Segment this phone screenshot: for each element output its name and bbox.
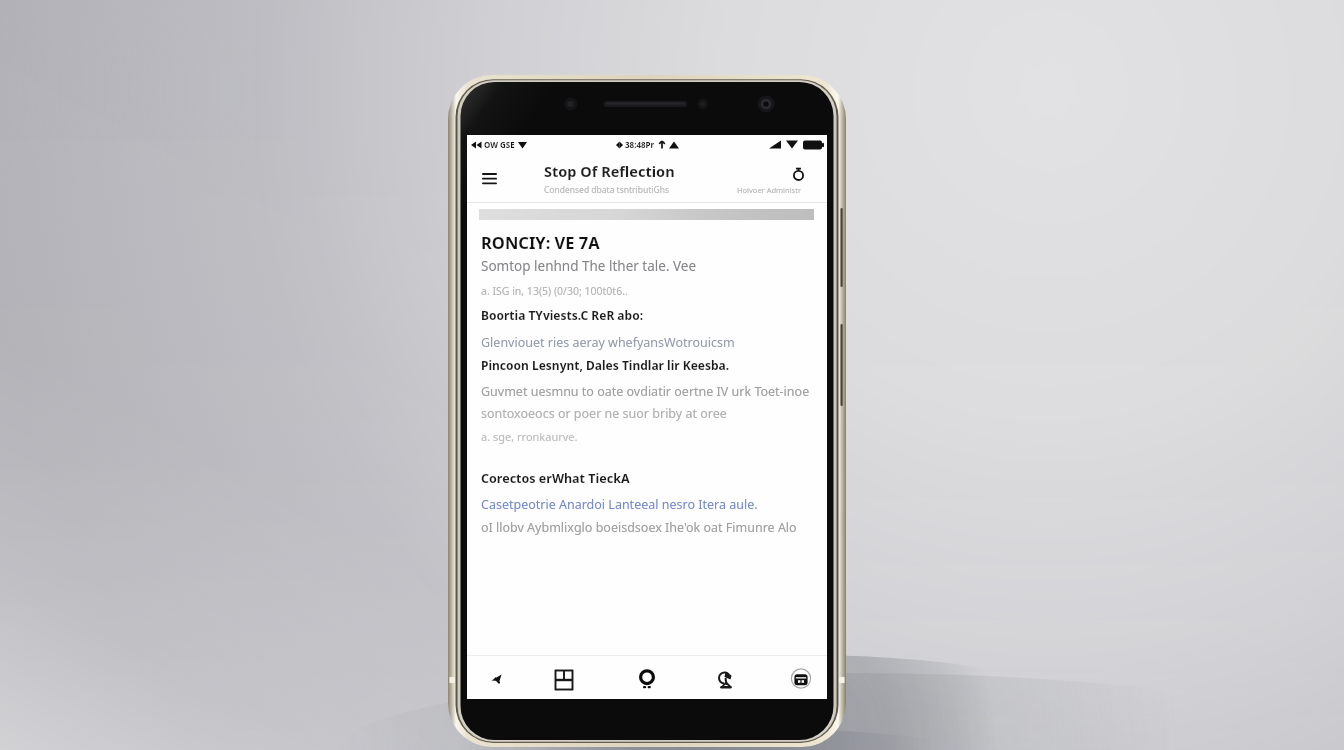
staticText: Condensed dbata tsntributiGhs (544, 184, 670, 196)
staticText: a. sge, rronkaurve. (481, 429, 578, 444)
staticText: Guvmet uesmnu to oate ovdiatir oertne IV… (481, 383, 810, 400)
staticText: Holvoer Administr (737, 185, 801, 195)
button[interactable]: Menu (476, 165, 502, 191)
staticText: Pincoon Lesnynt, Dales Tindlar lir Keesb… (481, 357, 730, 373)
staticText: Corectos erWhat TieckA (481, 470, 630, 487)
button[interactable]: Casetpeotrie Anardoi Lanteeal nesro Iter… (481, 496, 758, 513)
button[interactable]: Account (788, 163, 808, 183)
staticText: Boortia TYviests.C ReR abo: (481, 307, 644, 323)
staticText: OW GSE (484, 139, 515, 150)
button[interactable]: Navigate (475, 660, 521, 699)
button[interactable]: Search (624, 660, 670, 699)
button[interactable]: Profile (778, 660, 824, 699)
staticText: RONCIY: VE 7A (481, 231, 600, 253)
button[interactable]: Dashboard (541, 660, 587, 699)
staticText: 38:48Pr (625, 139, 655, 150)
staticText: Stop Of Reflection (544, 161, 675, 181)
staticText: sontoxoeocs or poer ne suor briby at ore… (481, 405, 727, 422)
staticText: oI llobv Aybmlixglo boeisdsoex Ihe'ok oa… (481, 519, 797, 536)
staticText: Casetpeotrie Anardoi Lanteeal nesro Iter… (481, 496, 758, 513)
staticText: a. ISG in, 13(5) (0/30; 100t0t6.. (481, 284, 628, 298)
staticText: Somtop lenhnd The lther tale. Vee (481, 257, 697, 275)
button[interactable]: Activity (704, 660, 750, 699)
button[interactable]: Glenviouet ries aeray whefyansWotrouicsm (481, 334, 735, 351)
staticText: Glenviouet ries aeray whefyansWotrouicsm (481, 334, 735, 351)
